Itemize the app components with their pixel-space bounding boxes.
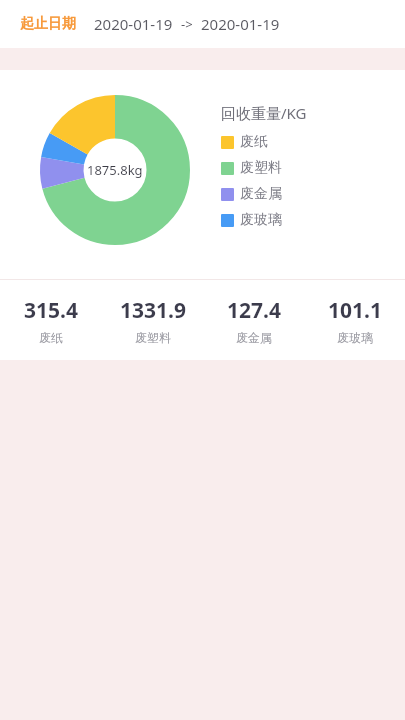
button[interactable]: 127.4 <box>203 296 304 345</box>
other: Recycling weight donut chart <box>40 95 190 245</box>
button[interactable]: 废金属 <box>221 185 282 203</box>
staticText: 废玻璃 <box>337 330 373 345</box>
button[interactable]: 废塑料 <box>221 159 282 177</box>
staticText: 2020-01-19 <box>201 14 280 34</box>
button[interactable]: 废玻璃 <box>221 211 282 229</box>
staticText: 1331.9 <box>120 296 186 325</box>
button[interactable]: 起止日期 <box>0 0 405 48</box>
button[interactable]: 废纸 <box>221 133 268 151</box>
button[interactable]: 315.4 <box>0 296 102 345</box>
button[interactable]: 1331.9 <box>102 296 203 345</box>
staticText: 废玻璃 <box>240 211 282 229</box>
staticText: 废金属 <box>240 185 282 203</box>
staticText: 315.4 <box>24 296 78 325</box>
staticText: -> <box>181 15 193 33</box>
staticText: 废塑料 <box>135 330 171 345</box>
button[interactable]: 101.1 <box>304 296 405 345</box>
staticText: 127.4 <box>227 296 281 325</box>
staticText: 废纸 <box>240 133 268 151</box>
staticText: 起止日期 <box>20 15 76 33</box>
staticText: 废金属 <box>236 330 272 345</box>
staticText: 101.1 <box>328 296 382 325</box>
staticText: 2020-01-19 <box>94 14 173 34</box>
staticText: 废纸 <box>39 330 63 345</box>
staticText: 回收重量/KG <box>221 103 307 123</box>
staticText: 1875.8kg <box>87 161 143 179</box>
staticText: 废塑料 <box>240 159 282 177</box>
